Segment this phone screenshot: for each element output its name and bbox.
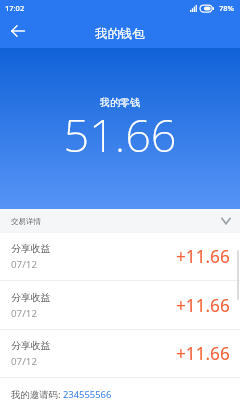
staticText: 07/12 (11, 355, 38, 368)
button[interactable]: 分享收益 (0, 233, 240, 280)
staticText: 分享收益 (11, 339, 51, 351)
button[interactable]: 交易详情 (0, 209, 240, 233)
staticText: 我的邀请码: (11, 388, 63, 400)
staticText: 07/12 (11, 258, 38, 271)
staticText: 17:02 (5, 3, 25, 13)
staticText: +11.66 (176, 342, 230, 365)
staticText: 51.66 (0, 104, 240, 165)
staticText: 07/12 (11, 307, 38, 320)
staticText: 我的钱包 (95, 26, 145, 42)
button[interactable]: 分享收益 (0, 281, 240, 329)
button[interactable]: Back (1, 14, 34, 47)
staticText: 78% (219, 3, 234, 13)
staticText: 234555566 (63, 388, 112, 400)
staticText: +11.66 (176, 245, 230, 268)
staticText: 我的零钱 (0, 96, 240, 109)
staticText: 分享收益 (11, 291, 51, 303)
staticText: 分享收益 (11, 242, 51, 254)
staticText: +11.66 (176, 294, 230, 317)
staticText: 交易详情 (11, 217, 41, 226)
button[interactable]: 分享收益 (0, 330, 240, 377)
